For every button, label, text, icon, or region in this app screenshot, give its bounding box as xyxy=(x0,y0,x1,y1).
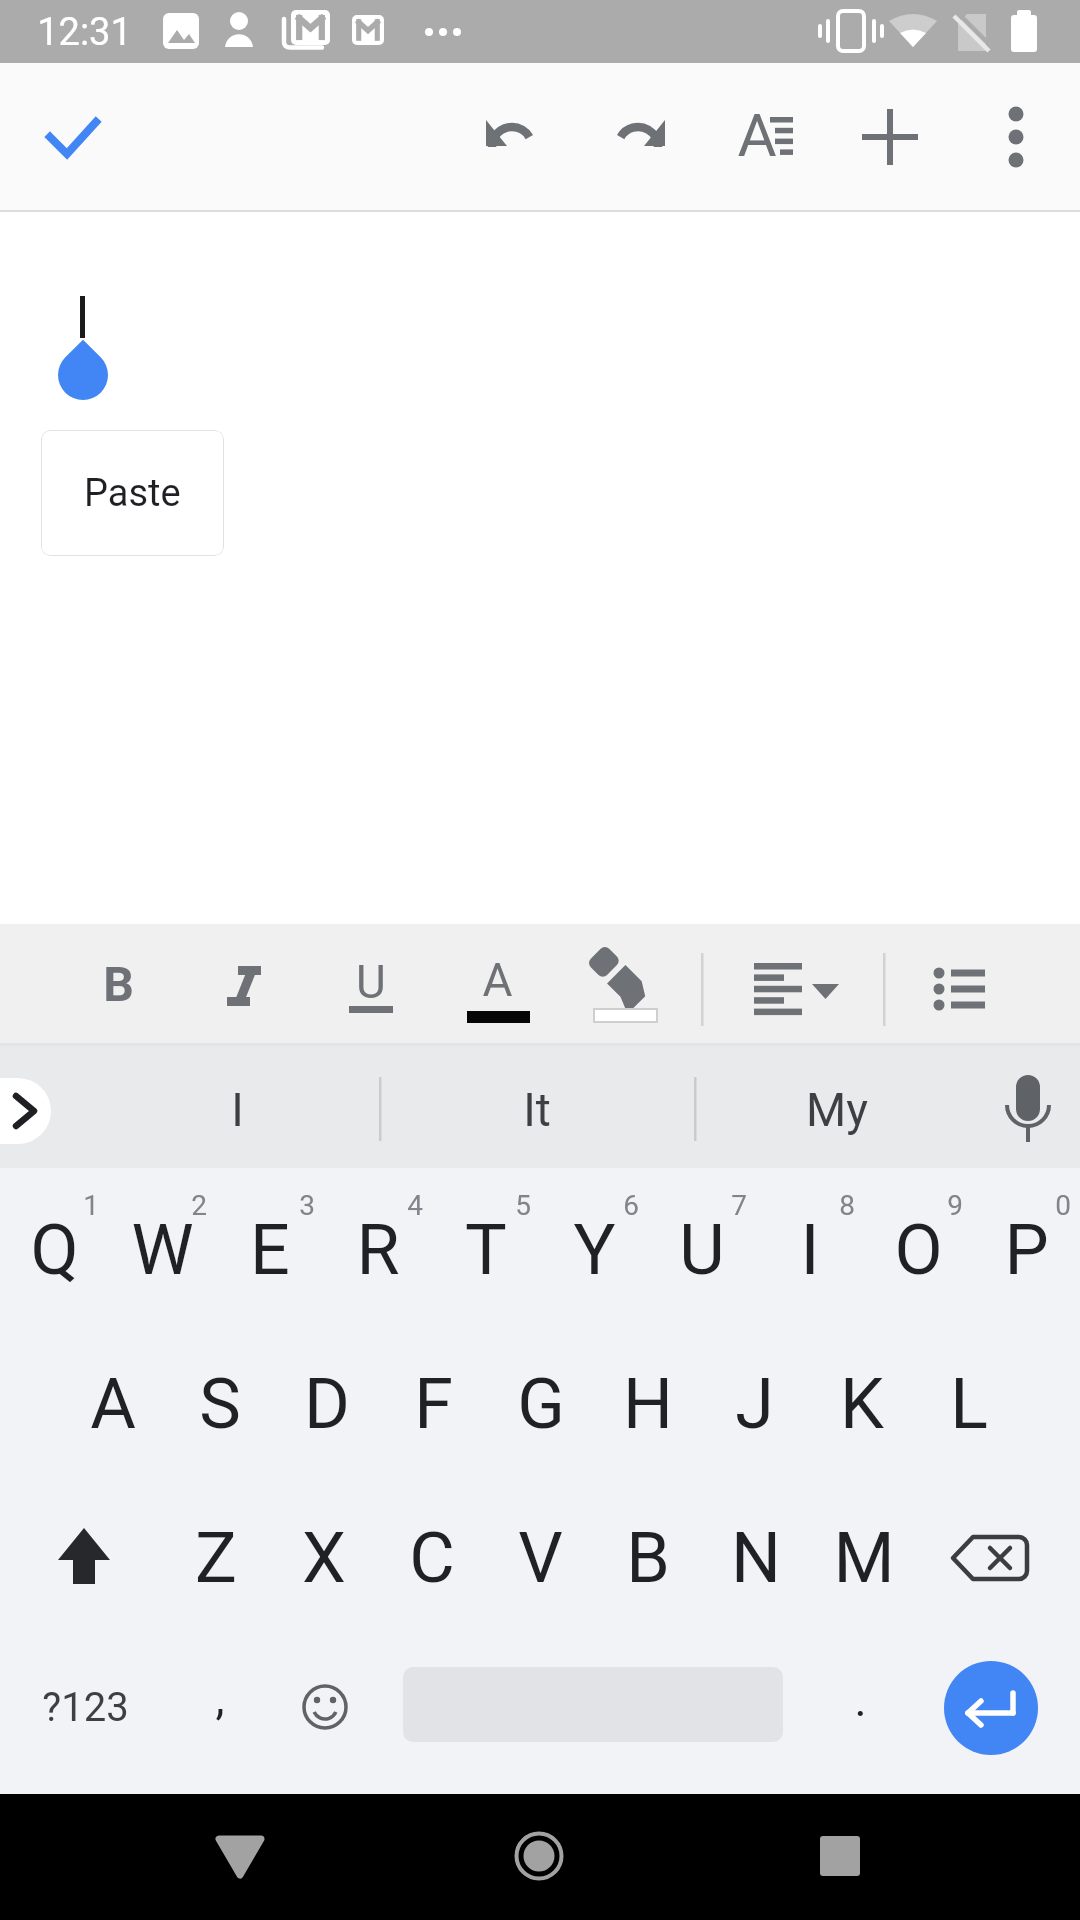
staticText: W xyxy=(131,1209,194,1291)
button[interactable] xyxy=(570,929,680,1039)
staticText: S xyxy=(199,1363,241,1445)
button[interactable]: X xyxy=(271,1491,377,1625)
staticText: 3 xyxy=(299,1189,315,1222)
staticText: 12:31 xyxy=(37,10,132,55)
button[interactable]: Q xyxy=(1,1183,107,1317)
button[interactable] xyxy=(835,82,945,192)
staticText: Paste xyxy=(84,471,181,516)
button[interactable] xyxy=(582,82,692,192)
staticText: , xyxy=(215,1671,225,1725)
staticText: J xyxy=(735,1363,774,1445)
button[interactable]: It xyxy=(402,1052,672,1168)
button[interactable]: I xyxy=(757,1183,863,1317)
staticText: 2 xyxy=(191,1189,207,1222)
staticText: B xyxy=(626,1517,670,1599)
staticText: 1 xyxy=(83,1189,99,1222)
button[interactable]: V xyxy=(487,1491,593,1625)
button[interactable] xyxy=(20,1492,160,1624)
staticText: 7 xyxy=(731,1189,747,1222)
staticText: I xyxy=(800,1209,820,1291)
button[interactable]: W xyxy=(109,1183,215,1317)
staticText: T xyxy=(465,1209,507,1291)
staticText: A xyxy=(737,100,777,170)
button[interactable] xyxy=(456,82,566,192)
button[interactable] xyxy=(480,1806,600,1906)
button[interactable]: My xyxy=(702,1052,972,1168)
staticText: 0 xyxy=(1055,1189,1071,1222)
button[interactable]: O xyxy=(865,1183,971,1317)
button[interactable]: A xyxy=(442,925,552,1035)
staticText: R xyxy=(356,1209,400,1291)
staticText: V xyxy=(518,1517,563,1599)
staticText: 5 xyxy=(515,1189,531,1222)
button[interactable]: Y xyxy=(541,1183,647,1317)
staticText: D xyxy=(304,1363,350,1445)
button[interactable]: T xyxy=(433,1183,539,1317)
staticText: 4 xyxy=(407,1189,423,1222)
staticText: E xyxy=(250,1209,290,1291)
staticText: 6 xyxy=(623,1189,639,1222)
button[interactable]: E xyxy=(217,1183,323,1317)
staticText: A xyxy=(90,1363,136,1445)
button[interactable] xyxy=(709,82,819,192)
button[interactable]: N xyxy=(703,1491,809,1625)
button[interactable]: . xyxy=(815,1640,905,1760)
staticText: 8 xyxy=(839,1189,855,1222)
button[interactable]: M xyxy=(811,1491,917,1625)
staticText: . xyxy=(854,1673,867,1727)
button[interactable]: C xyxy=(379,1491,485,1625)
staticText: U xyxy=(679,1209,725,1291)
button[interactable]: P xyxy=(973,1183,1079,1317)
button[interactable]: H xyxy=(595,1337,700,1471)
staticText: Z xyxy=(195,1517,237,1599)
staticText: ?123 xyxy=(42,1684,129,1731)
button[interactable]: , xyxy=(175,1638,265,1758)
staticText: C xyxy=(409,1517,455,1599)
staticText: A xyxy=(482,953,513,1007)
button[interactable] xyxy=(189,929,299,1039)
button[interactable] xyxy=(180,1806,300,1906)
button[interactable] xyxy=(723,929,843,1039)
button[interactable]: D xyxy=(274,1337,379,1471)
staticText: U xyxy=(356,955,386,1009)
button[interactable]: R xyxy=(325,1183,431,1317)
staticText: 9 xyxy=(947,1189,963,1222)
button[interactable]: ?123 xyxy=(10,1647,160,1767)
button[interactable] xyxy=(975,1052,1080,1168)
button[interactable] xyxy=(920,1492,1070,1624)
button[interactable]: A xyxy=(60,1337,165,1471)
button[interactable]: S xyxy=(167,1337,272,1471)
staticText: Y xyxy=(573,1209,616,1291)
button[interactable] xyxy=(270,1650,380,1765)
button[interactable]: G xyxy=(488,1337,593,1471)
staticText: Q xyxy=(30,1209,79,1291)
button[interactable]: B xyxy=(63,929,173,1039)
button[interactable]: B xyxy=(595,1491,701,1625)
button[interactable] xyxy=(780,1806,900,1906)
button[interactable]: U xyxy=(316,927,426,1037)
staticText: My xyxy=(806,1083,868,1137)
button[interactable] xyxy=(900,929,1020,1039)
button[interactable] xyxy=(0,1078,51,1144)
button[interactable]: Z xyxy=(163,1491,269,1625)
button[interactable]: J xyxy=(702,1337,807,1471)
button[interactable] xyxy=(18,82,128,192)
button[interactable]: I xyxy=(102,1052,372,1168)
button[interactable]: K xyxy=(809,1337,914,1471)
staticText: L xyxy=(950,1363,988,1445)
button[interactable]: Paste xyxy=(41,430,224,556)
button[interactable] xyxy=(961,82,1071,192)
staticText: G xyxy=(517,1363,565,1445)
button[interactable]: F xyxy=(381,1337,486,1471)
staticText: X xyxy=(302,1517,346,1599)
staticText: P xyxy=(1004,1209,1049,1291)
staticText: M xyxy=(833,1517,895,1599)
staticText: O xyxy=(894,1209,943,1291)
staticText: N xyxy=(731,1517,781,1599)
button[interactable]: L xyxy=(916,1337,1021,1471)
button[interactable]: U xyxy=(649,1183,755,1317)
button[interactable] xyxy=(944,1661,1038,1755)
staticText: It xyxy=(523,1083,551,1137)
staticText: H xyxy=(623,1363,673,1445)
